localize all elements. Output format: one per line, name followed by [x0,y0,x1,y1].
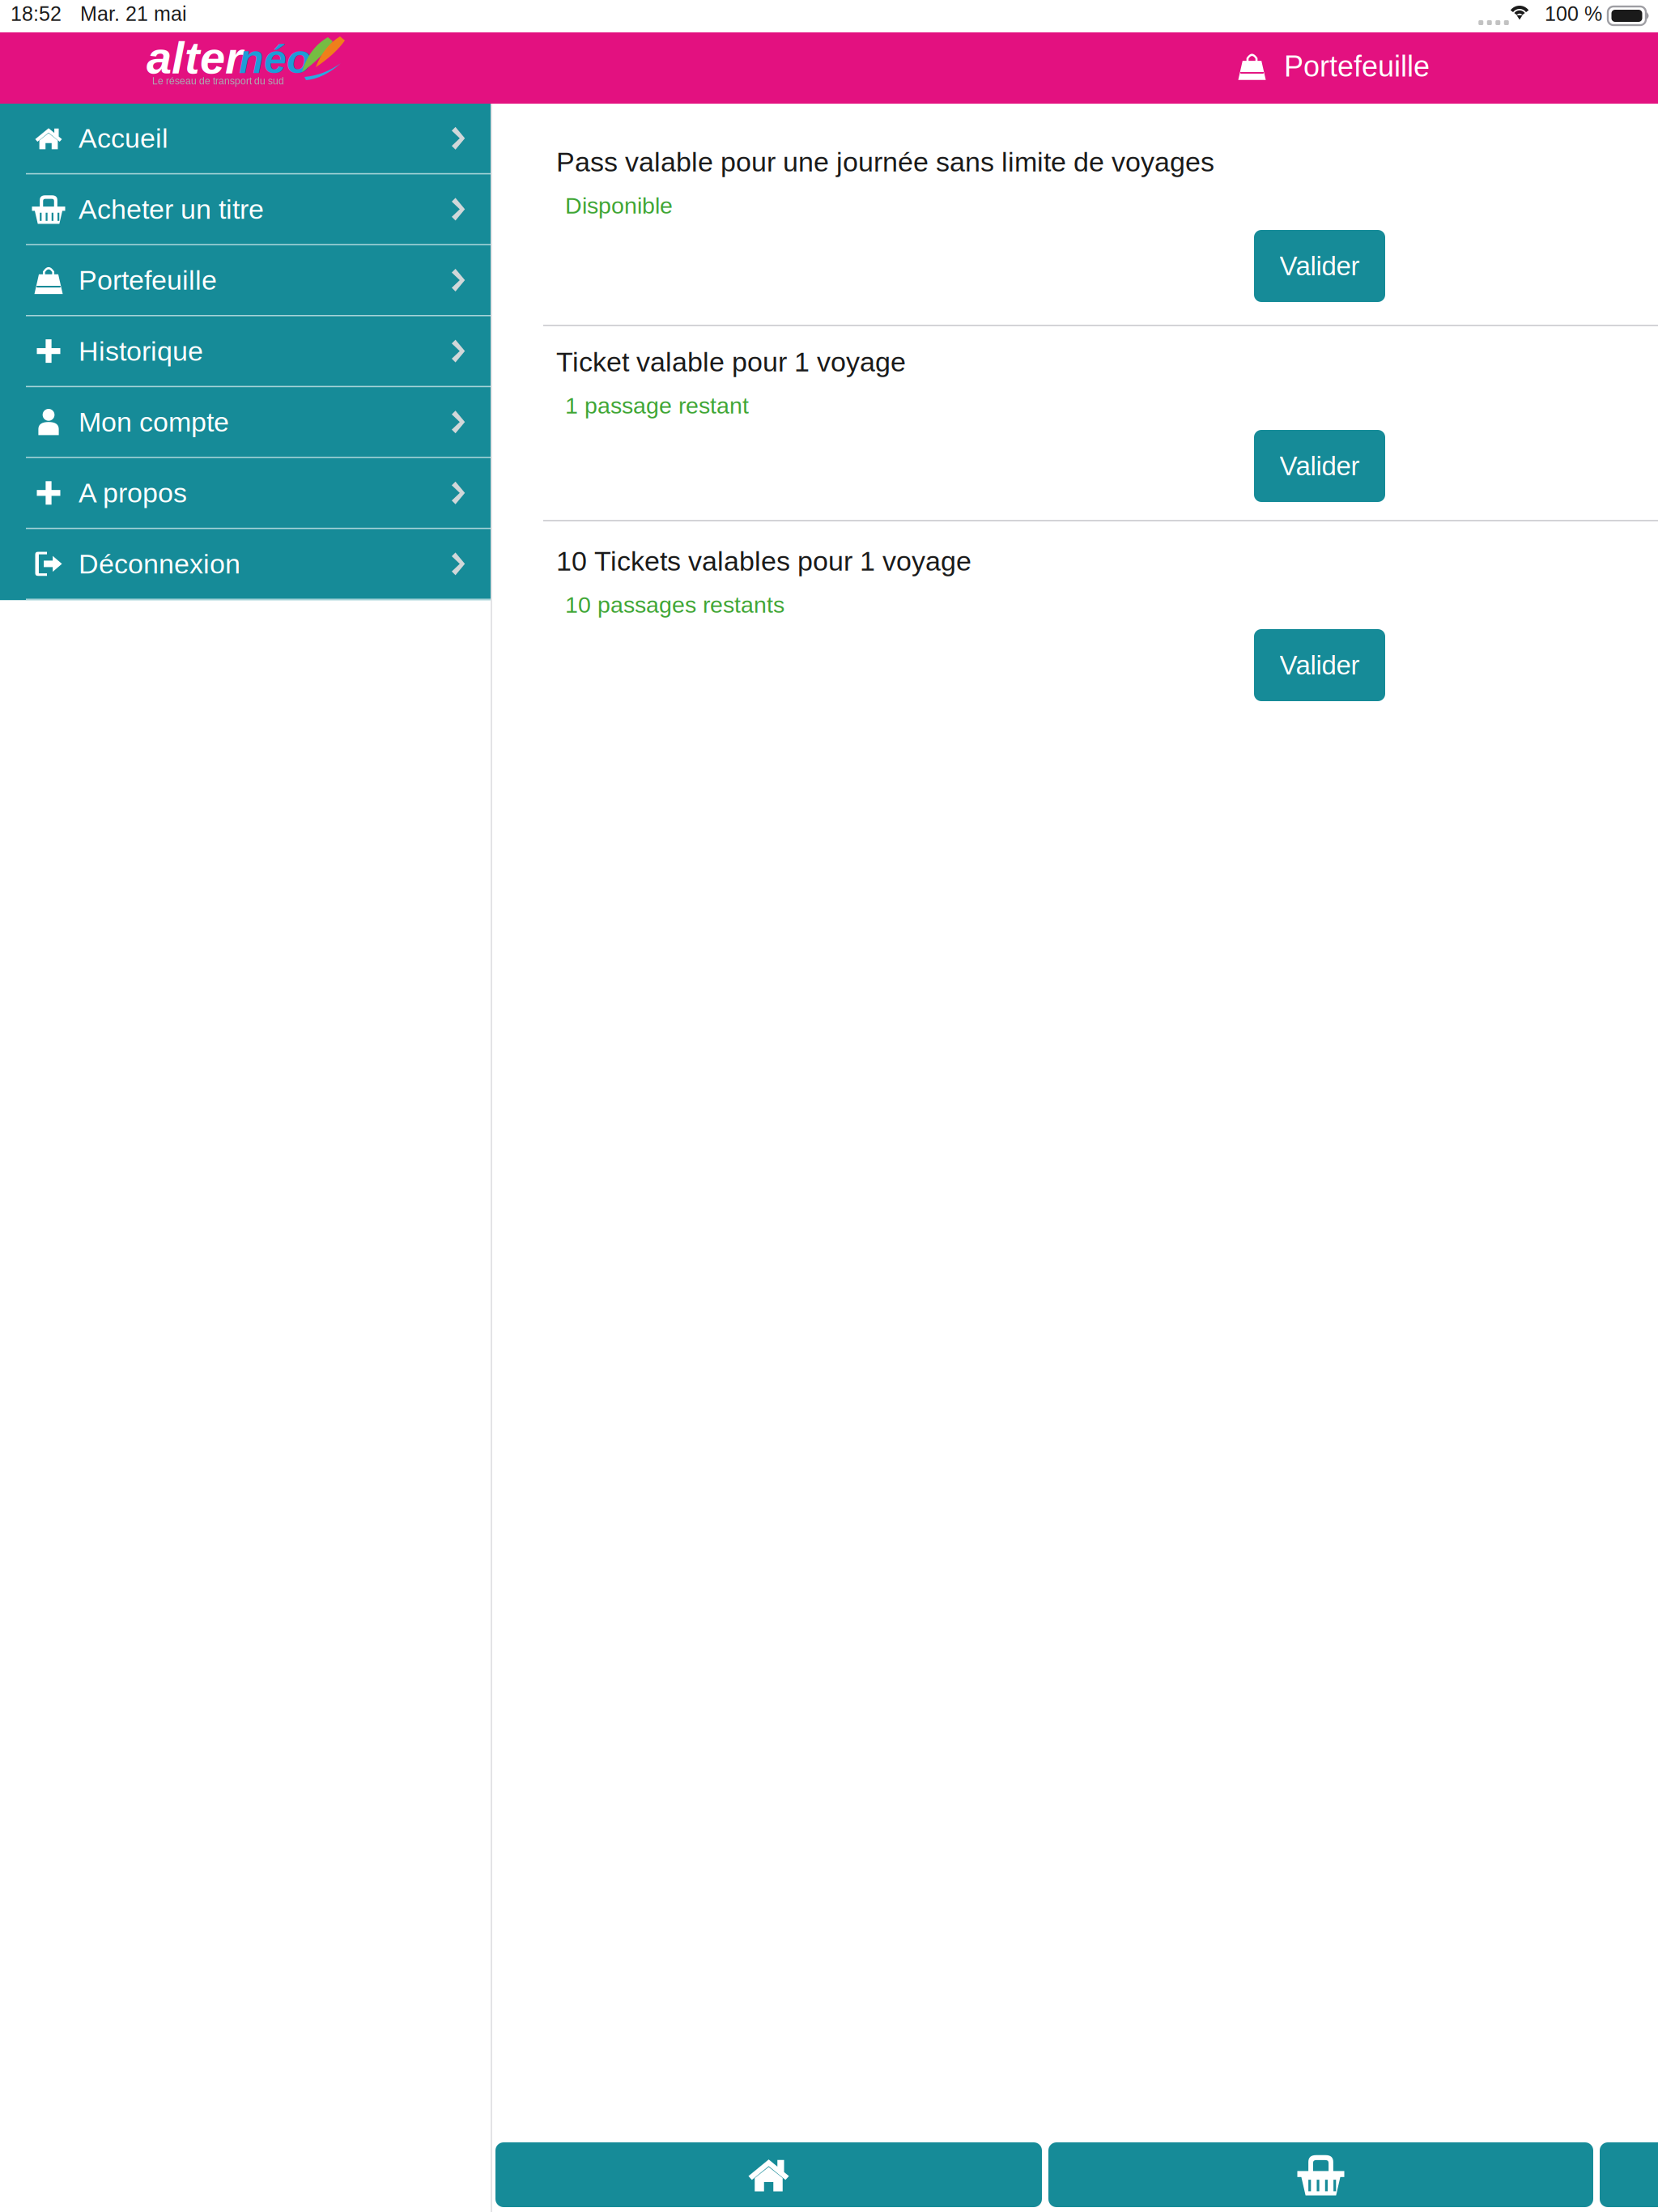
staticText: Disponible [565,193,673,218]
button[interactable]: Portefeuille [1237,50,1430,83]
staticText: 100 % [1545,2,1602,25]
staticText: Valider [1280,451,1360,481]
staticText: Accueil [79,123,168,154]
button[interactable]: Valider [1254,230,1385,302]
staticText: 10 Tickets valables pour 1 voyage [556,546,971,576]
button[interactable]: Valider [1254,430,1385,502]
staticText: Valider [1280,251,1360,281]
staticText: Pass valable pour une journée sans limit… [556,147,1214,177]
staticText: Acheter un titre [79,194,264,225]
staticText: 10 passages restants [565,592,784,618]
button[interactable]: Valider [1254,629,1385,701]
button[interactable]: Accueil [495,2142,1042,2207]
staticText: Ticket valable pour 1 voyage [556,347,906,377]
staticText: 1 passage restant [565,393,749,418]
staticText: néo [239,36,312,82]
staticText: Mon compte [79,407,229,437]
staticText: Déconnexion [79,548,240,579]
staticText: Mar. 21 mai [80,2,187,25]
button[interactable]: Acheter un titre [0,175,492,245]
button[interactable]: Portefeuille [0,245,492,316]
button[interactable]: Acheter un titre [1048,2142,1593,2207]
staticText: Portefeuille [79,265,217,296]
staticText: A propos [79,478,187,508]
staticText: 18:52 [11,2,62,25]
staticText: Portefeuille [1284,50,1430,83]
button[interactable]: Accueil [0,104,492,175]
staticText: alter [147,32,243,83]
button[interactable]: Mon compte [0,387,492,458]
button[interactable]: A propos [0,458,492,529]
button[interactable]: Historique [0,316,492,387]
button[interactable]: Déconnexion [0,529,492,600]
staticText: Historique [79,336,203,366]
staticText: Valider [1280,650,1360,680]
button[interactable]: Portefeuille [1600,2142,1658,2207]
staticText: Le réseau de transport du sud [152,75,284,86]
